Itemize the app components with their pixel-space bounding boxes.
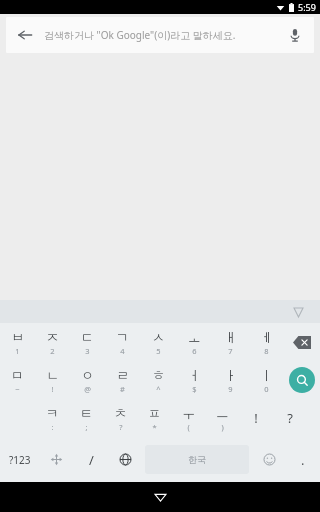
button[interactable]: ㅏ [212, 361, 248, 399]
button[interactable]: ? [273, 399, 307, 437]
staticText: : [51, 422, 54, 432]
staticText: ㅓ [188, 367, 201, 383]
staticText: ㅣ [260, 367, 273, 383]
staticText: 한국 [188, 454, 206, 465]
staticText: ㅐ [224, 329, 237, 345]
staticText: ㅌ [80, 405, 93, 421]
button[interactable]: Emoji [252, 437, 286, 482]
staticText: ㄷ [81, 329, 94, 345]
staticText: ㅁ [11, 367, 24, 383]
staticText: 검색하거나 "Ok Google"(이)라고 말하세요. [44, 28, 276, 42]
staticText: @ [84, 384, 91, 394]
staticText: 8 [264, 346, 269, 356]
button[interactable]: ㅇ [70, 361, 105, 399]
staticText: ㅇ [81, 367, 94, 383]
button[interactable]: ㅡ [205, 399, 239, 437]
staticText: 3 [85, 346, 90, 356]
button[interactable]: / [74, 437, 108, 482]
staticText: / [89, 451, 94, 469]
staticText: ㅎ [152, 367, 165, 383]
button[interactable]: ㅈ [35, 323, 70, 361]
staticText: 0 [264, 384, 269, 394]
staticText: $ [192, 384, 197, 394]
staticText: . [301, 451, 305, 469]
staticText: ; [85, 422, 88, 432]
staticText: ㅏ [224, 367, 237, 383]
button[interactable]: Search [284, 361, 320, 399]
button[interactable]: ㄷ [70, 323, 105, 361]
staticText: 5:59 [298, 1, 316, 13]
staticText: 5 [156, 346, 161, 356]
staticText: 2 [50, 346, 55, 356]
button[interactable]: Back [6, 17, 44, 53]
button[interactable]: 한국 [145, 445, 249, 474]
button[interactable]: Change language [108, 437, 142, 482]
button[interactable]: ?123 [0, 437, 39, 482]
staticText: ㅋ [46, 405, 59, 421]
staticText: ~ [15, 384, 20, 394]
button[interactable]: ㅋ [36, 399, 69, 437]
staticText: 9 [228, 384, 233, 394]
staticText: ㅔ [260, 329, 273, 345]
staticText: ㅍ [148, 405, 161, 421]
staticText: # [120, 384, 125, 394]
button[interactable]: ㅌ [69, 399, 103, 437]
staticText: ( [187, 422, 190, 432]
button[interactable]: Move cursor [39, 437, 74, 482]
staticText: 7 [228, 346, 233, 356]
staticText: ㅗ [188, 329, 201, 345]
button[interactable]: ㄹ [105, 361, 140, 399]
button[interactable]: ㄱ [105, 323, 140, 361]
button[interactable]: ㅔ [248, 323, 284, 361]
staticText: ㅂ [11, 329, 24, 345]
button[interactable]: ! [239, 399, 273, 437]
button[interactable]: ㅣ [248, 361, 284, 399]
staticText: ? [119, 422, 123, 432]
staticText: ㅜ [182, 405, 195, 421]
staticText: ) [221, 422, 224, 432]
button[interactable]: Back [6, 17, 314, 53]
button[interactable]: ㅁ [0, 361, 35, 399]
button[interactable]: ㅜ [171, 399, 205, 437]
staticText: 6 [192, 346, 197, 356]
staticText: ㄹ [116, 367, 129, 383]
button[interactable]: ㅂ [0, 323, 35, 361]
button[interactable]: ㅗ [176, 323, 212, 361]
button[interactable]: ㅊ [103, 399, 137, 437]
button[interactable]: . [286, 437, 320, 482]
staticText: ! [51, 384, 54, 394]
staticText: ㄴ [46, 367, 59, 383]
button[interactable]: ㄴ [35, 361, 70, 399]
button[interactable]: ㅎ [140, 361, 176, 399]
button[interactable]: Hide keyboard [145, 482, 175, 512]
button[interactable]: Backspace [284, 323, 320, 361]
staticText: * [152, 422, 157, 432]
button[interactable]: Expand suggestions [288, 302, 308, 322]
staticText: ㅅ [152, 329, 165, 345]
button[interactable]: Voice search [276, 17, 314, 53]
button[interactable]: ㅓ [176, 361, 212, 399]
staticText: 4 [120, 346, 125, 356]
button[interactable]: ㅍ [137, 399, 171, 437]
button[interactable]: ㅐ [212, 323, 248, 361]
staticText: ㄱ [116, 329, 129, 345]
staticText: ㅈ [46, 329, 59, 345]
staticText: ㅡ [216, 405, 229, 421]
staticText: ㅊ [114, 405, 127, 421]
staticText: ?123 [9, 453, 31, 467]
staticText: 1 [15, 346, 20, 356]
staticText: ? [287, 409, 293, 427]
staticText: ! [254, 409, 258, 427]
button[interactable]: ㅅ [140, 323, 176, 361]
staticText: ^ [156, 384, 161, 394]
